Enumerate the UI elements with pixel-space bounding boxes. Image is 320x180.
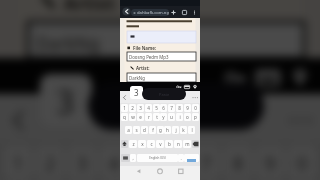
staticText: e	[139, 114, 142, 120]
staticText: n	[177, 141, 180, 147]
button[interactable]: ,	[130, 154, 136, 162]
button[interactable]: r	[145, 113, 152, 121]
button[interactable]: Tabs	[181, 9, 188, 16]
button[interactable]: New tab	[170, 9, 177, 16]
button[interactable]: o	[184, 113, 191, 121]
button[interactable]: x	[138, 140, 146, 148]
button[interactable]: n	[174, 140, 182, 148]
button[interactable]: 4	[145, 104, 152, 112]
button[interactable]: 7	[168, 104, 175, 112]
button[interactable]: q	[121, 113, 128, 121]
button[interactable]: v	[156, 140, 164, 148]
staticText: f	[152, 127, 154, 133]
staticText: Doosng Pedm Mp3	[129, 54, 169, 60]
button[interactable]: 5	[153, 104, 160, 112]
staticText: Artist:	[64, 0, 120, 14]
staticText: t	[156, 114, 158, 120]
staticText: ,	[132, 155, 134, 161]
button[interactable]: Backspace	[192, 140, 199, 148]
button[interactable]: 0	[192, 104, 199, 112]
staticText: x	[141, 141, 144, 147]
staticText: u	[170, 114, 173, 120]
staticText: b	[168, 141, 171, 147]
staticText: a	[127, 127, 130, 133]
button[interactable]: English (US)	[137, 154, 178, 162]
staticText: 3	[56, 78, 76, 122]
button[interactable]: Symbols	[121, 154, 130, 162]
button[interactable]: 9	[184, 104, 191, 112]
button[interactable]: 7	[192, 146, 220, 178]
staticText: 9	[186, 105, 189, 111]
button[interactable]: .	[178, 154, 184, 162]
staticText: Artist:	[136, 65, 150, 71]
button[interactable]: t	[153, 113, 160, 121]
button[interactable]: Shift	[121, 140, 128, 148]
button[interactable]: dahbafk.com.ng	[131, 9, 169, 16]
button[interactable]: 5	[132, 146, 160, 178]
button[interactable]: c	[147, 140, 155, 148]
button[interactable]: 2	[129, 104, 136, 112]
button[interactable]: More options	[191, 9, 198, 16]
button[interactable]: Paste	[88, 82, 264, 130]
button[interactable]: z	[129, 140, 137, 148]
button[interactable]: 1	[121, 104, 128, 112]
button[interactable]: f	[149, 126, 156, 134]
button[interactable]: 6	[160, 104, 167, 112]
button[interactable]: m	[183, 140, 191, 148]
staticText: h	[166, 127, 169, 133]
staticText: 5	[140, 150, 152, 174]
staticText: m	[185, 141, 190, 147]
staticText: 6	[168, 150, 180, 174]
staticText: 7	[170, 105, 173, 111]
staticText: w	[131, 114, 135, 120]
staticText: DarkNg	[129, 75, 145, 81]
staticText: 2	[131, 105, 134, 111]
button[interactable]: s	[133, 126, 140, 134]
button[interactable]: y	[160, 113, 167, 121]
button[interactable]: Back	[122, 7, 131, 16]
button[interactable]: g	[157, 126, 164, 134]
button[interactable]: b	[165, 140, 173, 148]
button[interactable]: h	[164, 126, 171, 134]
staticText: Paste	[156, 98, 200, 118]
staticText: 3	[134, 87, 139, 98]
staticText: 0	[194, 105, 197, 111]
button[interactable]: u	[168, 113, 175, 121]
button[interactable]: e	[137, 113, 144, 121]
button[interactable]: l	[188, 126, 195, 134]
button[interactable]: w	[129, 113, 136, 121]
staticText: d	[143, 127, 146, 133]
staticText: 6	[162, 105, 165, 111]
staticText: 4	[147, 105, 150, 111]
button[interactable]: k	[180, 126, 187, 134]
button[interactable]: 6	[160, 146, 188, 178]
button[interactable]: a	[125, 126, 132, 134]
staticText: c	[150, 141, 153, 147]
button[interactable]: j	[172, 126, 179, 134]
button[interactable]: p	[192, 113, 199, 121]
staticText: g	[159, 127, 162, 133]
button[interactable]: 8	[176, 104, 183, 112]
button[interactable]: Paste	[142, 88, 186, 100]
staticText: .	[180, 155, 182, 161]
button[interactable]: 4	[100, 146, 128, 178]
staticText: s	[135, 127, 138, 133]
button[interactable]: i	[176, 113, 183, 121]
staticText: Paste	[159, 92, 170, 97]
button[interactable]: Next	[184, 154, 199, 162]
staticText: 1	[123, 105, 126, 111]
button[interactable]: 3	[137, 104, 144, 112]
staticText: 3	[139, 105, 142, 111]
staticText: v	[159, 141, 162, 147]
button[interactable]: d	[141, 126, 148, 134]
